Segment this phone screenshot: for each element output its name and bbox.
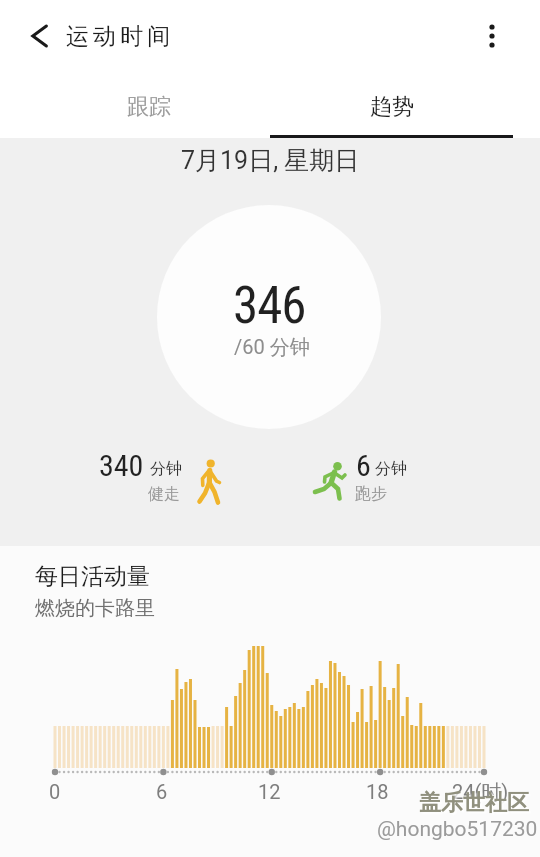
staticText: 24(时) [452, 780, 509, 805]
staticText: 6 [156, 780, 168, 803]
staticText: 0 [49, 780, 61, 803]
staticText: 7月19日, 星期日 [181, 145, 360, 176]
staticText: 346 [233, 276, 306, 336]
staticText: /60 分钟 [234, 335, 310, 360]
button[interactable] [18, 14, 62, 58]
staticText: 跑步 [355, 484, 387, 504]
button[interactable]: 趋势 [270, 75, 513, 138]
staticText: 跟踪 [127, 93, 171, 121]
button[interactable]: 340 [96, 448, 226, 510]
staticText: 趋势 [370, 93, 414, 121]
button[interactable]: 6 [313, 448, 423, 510]
staticText: 每日活动量 [35, 562, 150, 591]
staticText: 燃烧的卡路里 [35, 596, 155, 621]
staticText: 健走 [148, 484, 180, 504]
staticText: 运动时间 [64, 22, 172, 51]
staticText: 6 [356, 448, 371, 483]
staticText: 分钟 [150, 459, 182, 479]
staticText: 340 [99, 448, 144, 483]
staticText: 12 [258, 780, 281, 803]
button[interactable]: 跟踪 [27, 75, 270, 138]
staticText: 18 [366, 780, 389, 803]
staticText: @hongbo517230 [377, 817, 538, 842]
button[interactable] [470, 14, 514, 58]
staticText: 分钟 [375, 459, 407, 479]
staticText: 盖乐世社区 [419, 789, 529, 817]
